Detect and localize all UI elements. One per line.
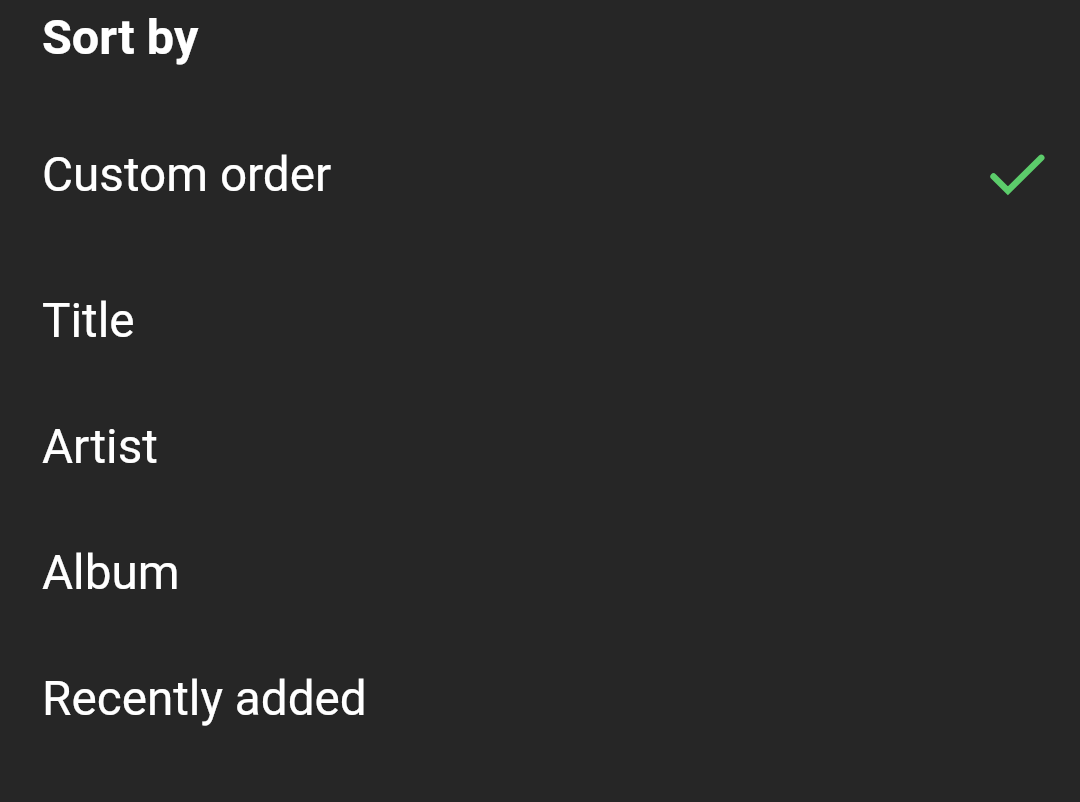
button[interactable]: Artist <box>0 384 1080 510</box>
button[interactable]: Recently added <box>0 636 1080 762</box>
staticText: Title <box>42 293 135 349</box>
staticText: Recently added <box>42 671 367 727</box>
button[interactable]: Custom order <box>0 112 1080 238</box>
staticText: Artist <box>42 419 158 475</box>
other: Selected <box>980 143 1044 207</box>
button[interactable]: Title <box>0 258 1080 384</box>
staticText: Custom order <box>42 147 332 203</box>
staticText: Sort by <box>42 9 199 66</box>
button[interactable]: Album <box>0 510 1080 636</box>
staticText: Album <box>42 545 180 601</box>
